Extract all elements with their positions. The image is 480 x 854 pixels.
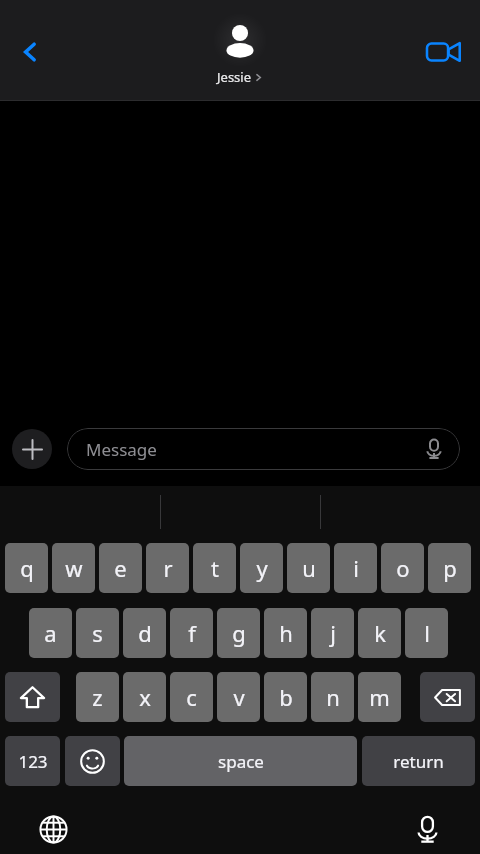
- button[interactable]: a: [29, 608, 72, 658]
- other: Dictate: [421, 436, 447, 462]
- button[interactable]: Add attachment: [12, 429, 52, 469]
- staticText: l: [424, 618, 430, 648]
- staticText: r: [163, 553, 173, 583]
- button[interactable]: v: [217, 672, 260, 722]
- button[interactable]: Message: [67, 428, 460, 470]
- staticText: 123: [18, 750, 48, 773]
- staticText: u: [302, 553, 316, 583]
- staticText: g: [232, 618, 246, 648]
- staticText: k: [374, 618, 386, 648]
- staticText: e: [114, 553, 127, 583]
- button[interactable]: Emoji: [65, 736, 120, 786]
- button[interactable]: 123: [5, 736, 60, 786]
- staticText: h: [279, 618, 293, 648]
- staticText: o: [396, 553, 410, 583]
- button[interactable]: s: [76, 608, 119, 658]
- staticText: a: [44, 618, 57, 648]
- button[interactable]: g: [217, 608, 260, 658]
- staticText: y: [256, 553, 268, 583]
- button[interactable]: j: [311, 608, 354, 658]
- staticText: space: [218, 750, 264, 773]
- button[interactable]: return: [362, 736, 475, 786]
- button[interactable]: k: [358, 608, 401, 658]
- button[interactable]: space: [124, 736, 357, 786]
- button[interactable]: l: [405, 608, 448, 658]
- staticText: b: [279, 682, 293, 712]
- staticText: return: [393, 750, 444, 773]
- button[interactable]: h: [264, 608, 307, 658]
- staticText: n: [326, 682, 340, 712]
- button[interactable]: x: [123, 672, 166, 722]
- button[interactable]: i: [334, 543, 377, 593]
- staticText: i: [353, 553, 359, 583]
- staticText: c: [186, 682, 197, 712]
- staticText: s: [92, 618, 103, 648]
- staticText: m: [369, 682, 390, 712]
- button[interactable]: u: [287, 543, 330, 593]
- button[interactable]: Voice input: [404, 806, 450, 852]
- staticText: w: [65, 553, 83, 583]
- button[interactable]: y: [240, 543, 283, 593]
- button[interactable]: p: [428, 543, 471, 593]
- button[interactable]: Jessie: [214, 14, 266, 86]
- button[interactable]: w: [52, 543, 95, 593]
- button[interactable]: m: [358, 672, 401, 722]
- button[interactable]: r: [146, 543, 189, 593]
- button[interactable]: o: [381, 543, 424, 593]
- staticText: Jessie: [217, 68, 252, 86]
- button[interactable]: Video call: [416, 24, 472, 80]
- staticText: j: [330, 618, 336, 648]
- button[interactable]: e: [99, 543, 142, 593]
- staticText: z: [92, 682, 103, 712]
- button[interactable]: d: [123, 608, 166, 658]
- button[interactable]: c: [170, 672, 213, 722]
- button[interactable]: Backspace: [420, 672, 475, 722]
- button[interactable]: b: [264, 672, 307, 722]
- button[interactable]: f: [170, 608, 213, 658]
- button[interactable]: q: [5, 543, 48, 593]
- staticText: f: [188, 618, 196, 648]
- staticText: t: [211, 553, 219, 583]
- button[interactable]: Back: [6, 28, 54, 76]
- staticText: v: [233, 682, 245, 712]
- staticText: p: [443, 553, 457, 583]
- button[interactable]: Switch keyboard: [30, 806, 76, 852]
- button[interactable]: Shift: [5, 672, 60, 722]
- staticText: q: [20, 553, 34, 583]
- staticText: Message: [86, 438, 157, 461]
- button[interactable]: z: [76, 672, 119, 722]
- staticText: d: [138, 618, 152, 648]
- staticText: x: [139, 682, 151, 712]
- button[interactable]: t: [193, 543, 236, 593]
- button[interactable]: n: [311, 672, 354, 722]
